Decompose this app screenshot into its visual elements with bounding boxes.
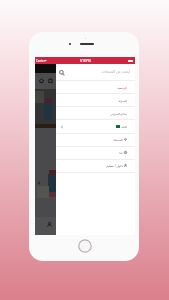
staticText: Carrier [36, 59, 45, 63]
button[interactable]: دخول / تسجيل [56, 159, 135, 172]
staticText: عنا [119, 151, 123, 154]
button[interactable]: عنا [56, 146, 135, 159]
other: Search [59, 70, 65, 76]
other: Account [47, 222, 52, 227]
button[interactable]: المفضلة [56, 133, 135, 146]
staticText: المفضلة [113, 138, 123, 141]
staticText: ابحث عن المنتجات [101, 69, 130, 74]
button[interactable]: الرئيسية [56, 81, 135, 94]
staticText: اللغة [121, 125, 127, 128]
staticText: دخول / تسجيل [105, 164, 123, 168]
staticText: 5:18 PM [80, 59, 91, 63]
button[interactable]: اللغة [56, 120, 135, 133]
staticText: المدونة [118, 99, 127, 102]
button[interactable]: Search [56, 64, 135, 81]
button[interactable]: المدونة [56, 94, 135, 107]
staticText: بضائع المعرض [110, 112, 127, 116]
staticText: الرئيسية [117, 86, 127, 89]
button[interactable]: بضائع المعرض [56, 107, 135, 120]
